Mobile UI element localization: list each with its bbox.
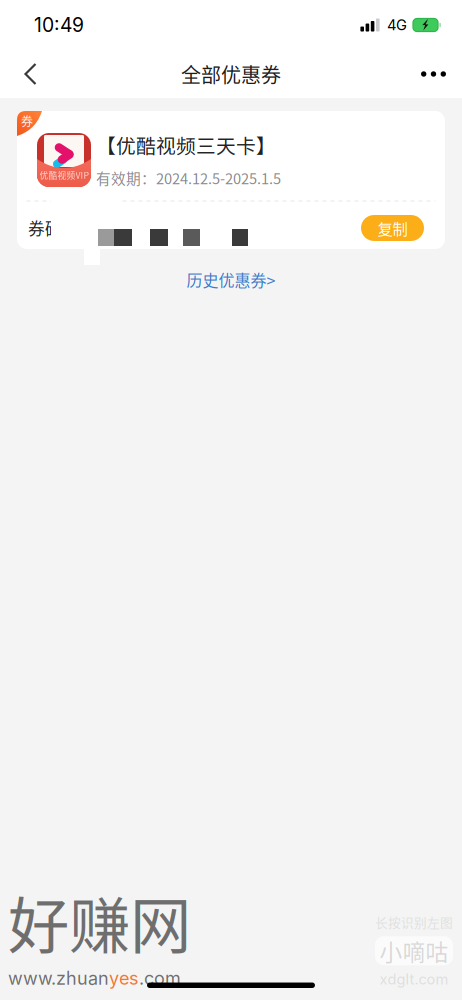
staticText: yes xyxy=(109,967,139,989)
staticText: 长按识别左图 xyxy=(375,913,453,931)
staticText: 小嘀咕 xyxy=(379,934,448,967)
staticText: 10:49 xyxy=(34,13,84,37)
staticText: 券 xyxy=(21,112,33,130)
staticText: xdglt.com xyxy=(379,970,448,988)
staticText: 优酷视频VIP xyxy=(39,169,88,181)
staticText: 复制 xyxy=(377,217,407,239)
staticText: 全部优惠券 xyxy=(181,59,281,88)
staticText: 有效期：2024.12.5-2025.1.5 xyxy=(96,167,281,188)
staticText: www.zhuan xyxy=(8,967,109,989)
staticText: .com xyxy=(139,967,181,989)
button[interactable]: 复制 xyxy=(361,215,424,241)
staticText: 4G xyxy=(387,16,407,34)
button[interactable]: 历史优惠券> xyxy=(174,249,287,300)
button[interactable]: Back xyxy=(0,50,53,97)
staticText: 好赚网 xyxy=(8,877,191,966)
staticText: 【优酷视频三天卡】 xyxy=(96,131,276,159)
button[interactable]: More options xyxy=(405,55,462,93)
staticText: 历史优惠券> xyxy=(186,268,275,291)
staticText: 券码 xyxy=(28,216,62,240)
